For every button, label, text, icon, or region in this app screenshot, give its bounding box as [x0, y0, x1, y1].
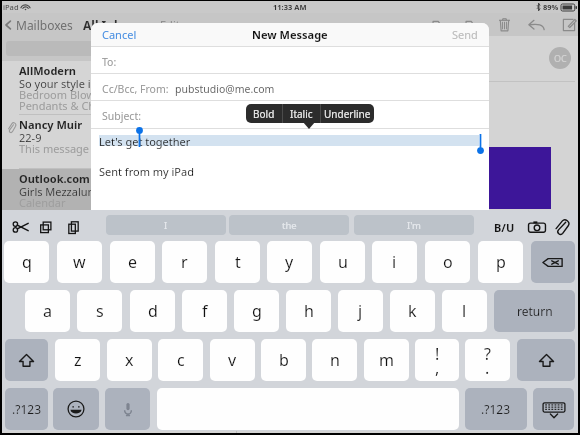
button[interactable]: Shift [517, 339, 575, 381]
button[interactable]: Cut [9, 216, 31, 238]
staticText: p [496, 251, 506, 273]
staticText: B/U [494, 220, 515, 235]
staticText: e [128, 251, 138, 273]
staticText: w [73, 251, 86, 273]
staticText: .?123 [481, 401, 511, 417]
staticText: Cancel [102, 27, 137, 42]
button[interactable]: .?123 [465, 388, 527, 430]
staticText: l [462, 300, 467, 322]
staticText: Let's get together [99, 134, 191, 149]
button[interactable]: j [338, 290, 383, 332]
button[interactable]: b [261, 339, 306, 381]
staticText: n [330, 349, 340, 371]
staticText: Sent from my iPad [99, 164, 194, 179]
button[interactable]: Paste [62, 216, 84, 238]
staticText: Italic [290, 107, 313, 121]
button[interactable]: t [215, 241, 260, 283]
button[interactable]: x [107, 339, 152, 381]
button[interactable]: m [364, 339, 409, 381]
staticText: the [282, 219, 297, 232]
staticText: t [235, 251, 241, 273]
button[interactable]: n [312, 339, 357, 381]
button[interactable]: Attach [550, 216, 572, 238]
staticText: y [285, 251, 294, 273]
staticText: g [252, 300, 262, 322]
button[interactable]: I'm [354, 215, 474, 235]
staticText: Underline [324, 107, 371, 121]
staticText: 11:33 AM [273, 2, 307, 12]
button[interactable]: Underline [321, 104, 374, 123]
button[interactable]: s [77, 290, 122, 332]
button[interactable]: k [390, 290, 435, 332]
staticText: 22-9 [19, 130, 42, 145]
staticText: c [177, 349, 185, 371]
staticText: This message has no content. [19, 141, 172, 156]
staticText: x [125, 349, 134, 371]
button[interactable]: d [130, 290, 175, 332]
staticText: a [43, 300, 52, 322]
staticText: 89% [543, 2, 559, 12]
button[interactable]: a [25, 290, 70, 332]
button[interactable]: Bold [246, 104, 282, 123]
staticText: .?123 [12, 401, 42, 417]
staticText: h [304, 300, 314, 322]
button[interactable]: e [110, 241, 155, 283]
button[interactable]: z [55, 339, 100, 381]
staticText: ? [484, 343, 491, 365]
staticText: Nancy Muir [19, 117, 83, 132]
staticText: return [517, 303, 553, 319]
button[interactable]: Shift [5, 339, 48, 381]
staticText: iPad [3, 2, 19, 12]
staticText: s [96, 300, 104, 322]
button[interactable]: Outlook.com Calendar [0, 169, 236, 214]
staticText: OC [554, 52, 567, 64]
button[interactable]: Backspace [531, 241, 575, 283]
button[interactable]: Cancel [91, 23, 149, 46]
button[interactable]: r [162, 241, 207, 283]
button[interactable]: Emoji [53, 388, 99, 430]
button[interactable]: o [425, 241, 470, 283]
staticText: Edit [160, 17, 180, 32]
staticText: Calendar [19, 195, 66, 210]
staticText: m [379, 349, 394, 371]
button[interactable]: g [234, 290, 279, 332]
button[interactable]: ? [465, 339, 510, 381]
button[interactable]: Copy [35, 216, 57, 238]
staticText: Girls Mezzaluna on Friday [19, 184, 152, 199]
button[interactable]: .?123 [5, 388, 48, 430]
button[interactable]: u [320, 241, 365, 283]
staticText: To: [102, 55, 117, 69]
button[interactable]: AllModern [0, 61, 236, 115]
button[interactable]: Send [440, 23, 489, 46]
button[interactable]: p [478, 241, 523, 283]
staticText: o [443, 251, 453, 273]
button[interactable]: w [57, 241, 102, 283]
button[interactable]: Italic [283, 104, 320, 123]
button[interactable]: Search [6, 41, 230, 56]
staticText: Bold [253, 107, 275, 121]
button[interactable]: l [442, 290, 487, 332]
button[interactable]: Nancy Muir [0, 115, 236, 169]
button[interactable]: y [267, 241, 312, 283]
button[interactable]: Hide keyboard [533, 388, 574, 430]
staticText: f [202, 300, 208, 322]
button[interactable]: return [494, 290, 575, 332]
button[interactable]: the [229, 215, 349, 235]
button[interactable]: i [372, 241, 417, 283]
button[interactable]: Dictate [105, 388, 150, 430]
button[interactable]: ! [415, 339, 459, 381]
staticText: Pendants & Chandeliers [19, 98, 143, 113]
button[interactable]: q [4, 241, 49, 283]
staticText: r [181, 251, 188, 273]
button[interactable]: Camera [526, 216, 548, 238]
button[interactable]: B/U [491, 216, 517, 238]
button[interactable]: c [158, 339, 203, 381]
staticText: pubstudio@me.com [175, 82, 275, 96]
button[interactable]: f [182, 290, 227, 332]
staticText: Mailboxes [16, 17, 73, 33]
button[interactable]: v [210, 339, 255, 381]
staticText: q [22, 251, 32, 273]
button[interactable]: h [286, 290, 331, 332]
